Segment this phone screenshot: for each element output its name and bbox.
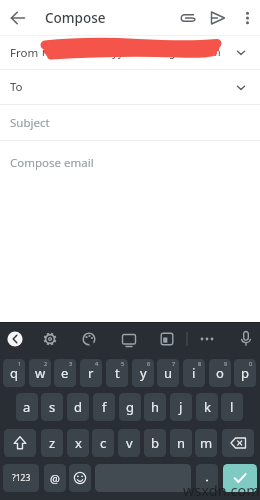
button[interactable] [3, 327, 27, 351]
button[interactable] [196, 327, 218, 351]
staticText: y [140, 364, 147, 382]
button[interactable]: u [157, 359, 179, 387]
button[interactable]: w [29, 359, 51, 387]
button[interactable]: m [195, 429, 217, 457]
staticText: 5 [121, 360, 125, 367]
staticText: Compose email [10, 155, 94, 171]
staticText: v [126, 434, 133, 452]
staticText: 4 [95, 360, 99, 367]
button[interactable] [236, 2, 260, 34]
staticText: 8 [198, 360, 202, 367]
button[interactable] [77, 327, 101, 351]
button[interactable] [222, 429, 254, 457]
button[interactable]: Subject [0, 105, 260, 140]
staticText: From [10, 45, 39, 61]
button[interactable] [234, 327, 258, 351]
button[interactable] [223, 464, 257, 492]
staticText: n [177, 434, 186, 452]
button[interactable]: d [67, 393, 89, 421]
button[interactable] [38, 327, 62, 351]
button[interactable]: x [67, 429, 89, 457]
staticText: 2 [44, 360, 48, 367]
button[interactable]: s [41, 393, 63, 421]
button[interactable]: a [16, 393, 38, 421]
button[interactable] [4, 2, 34, 34]
button[interactable]: g [119, 393, 141, 421]
button[interactable]: i [183, 359, 205, 387]
button[interactable]: z [41, 429, 63, 457]
button[interactable]: h [144, 393, 166, 421]
staticText: o [216, 364, 224, 382]
button[interactable]: e [54, 359, 76, 387]
button[interactable]: r [80, 359, 102, 387]
staticText: t [115, 364, 120, 382]
staticText: c [100, 434, 107, 452]
staticText: @ [50, 471, 60, 486]
staticText: 3 [69, 360, 73, 367]
staticText: f [102, 398, 107, 416]
staticText: p [241, 364, 249, 382]
staticText: e [61, 364, 69, 382]
button[interactable]: To [0, 69, 260, 104]
button[interactable] [117, 327, 141, 351]
button[interactable]: b [144, 429, 166, 457]
staticText: 6 [147, 360, 151, 367]
button[interactable] [95, 464, 191, 492]
button[interactable]: j [170, 393, 192, 421]
staticText: a [23, 398, 31, 416]
staticText: d [74, 398, 82, 416]
staticText: s [49, 398, 56, 416]
button[interactable] [155, 327, 179, 351]
staticText: j [179, 398, 183, 416]
button[interactable]: o [209, 359, 231, 387]
staticText: r [88, 364, 94, 382]
button[interactable]: Compose email [0, 141, 260, 322]
staticText: k [204, 398, 211, 416]
staticText: x [75, 434, 82, 452]
staticText: m [200, 434, 213, 452]
staticText: ?123 [12, 472, 31, 484]
staticText: l [230, 398, 234, 416]
staticText: u [164, 364, 173, 382]
staticText: 7 [172, 360, 176, 367]
button[interactable]: l [221, 393, 243, 421]
staticText: i [192, 364, 196, 382]
staticText: 0 [249, 360, 253, 367]
staticText: w [35, 364, 46, 382]
staticText: To [10, 79, 23, 95]
button[interactable]: From [0, 36, 260, 69]
button[interactable] [172, 2, 202, 34]
staticText: b [151, 434, 159, 452]
button[interactable]: q [3, 359, 25, 387]
button[interactable] [69, 464, 91, 492]
staticText: q [10, 364, 18, 382]
staticText: 9 [224, 360, 228, 367]
button[interactable]: c [92, 429, 114, 457]
staticText: 1 [18, 360, 22, 367]
button[interactable]: @ [44, 464, 66, 492]
button[interactable] [196, 464, 218, 492]
staticText: h [151, 398, 160, 416]
button[interactable] [4, 429, 36, 457]
staticText: wsxdn.com [183, 480, 260, 500]
button[interactable]: f [93, 393, 115, 421]
button[interactable]: v [118, 429, 140, 457]
button[interactable]: y [132, 359, 154, 387]
button[interactable]: k [196, 393, 218, 421]
staticText: g [126, 398, 134, 416]
button[interactable]: p [234, 359, 256, 387]
button[interactable]: ?123 [3, 464, 39, 492]
staticText: z [49, 434, 56, 452]
staticText: muhammadtayyab1983@gmail.com [42, 45, 221, 59]
button[interactable] [203, 2, 233, 34]
button[interactable]: t [106, 359, 128, 387]
button[interactable]: n [170, 429, 192, 457]
staticText: Compose [45, 9, 106, 27]
staticText: Subject [10, 115, 50, 131]
